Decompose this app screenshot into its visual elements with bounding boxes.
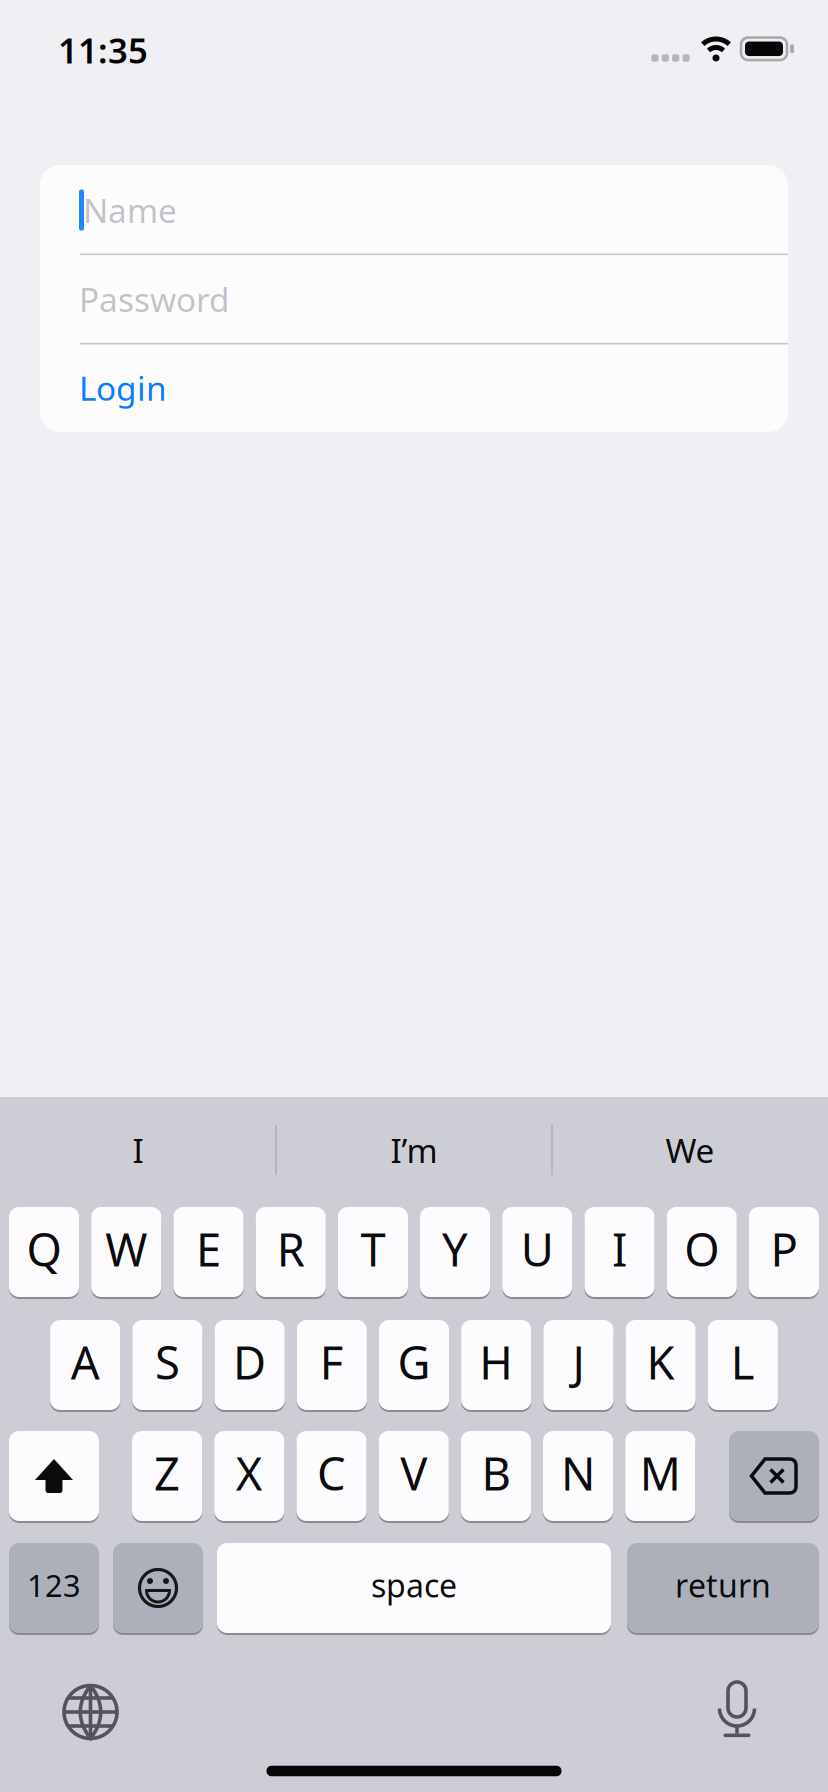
button[interactable]: Z	[132, 1430, 202, 1522]
staticText: 123	[27, 1565, 81, 1605]
staticText: H	[479, 1332, 513, 1392]
button[interactable]: W	[91, 1206, 161, 1298]
staticText: return	[675, 1564, 771, 1606]
button[interactable]: Shift	[9, 1430, 99, 1522]
staticText: S	[155, 1332, 180, 1392]
button[interactable]: K	[625, 1319, 696, 1411]
button[interactable]: We	[555, 1107, 825, 1193]
button[interactable]: Emoji	[113, 1542, 203, 1634]
button[interactable]: Dictation	[715, 1682, 759, 1738]
button[interactable]: V	[379, 1430, 449, 1522]
staticText: Name	[83, 188, 177, 232]
button[interactable]: L	[708, 1319, 778, 1411]
button[interactable]: R	[256, 1206, 326, 1298]
button[interactable]: U	[502, 1206, 572, 1298]
button[interactable]: I	[584, 1206, 655, 1298]
staticText: G	[397, 1332, 430, 1392]
button[interactable]: Delete	[729, 1430, 819, 1522]
button[interactable]: Q	[9, 1206, 79, 1298]
staticText: 11:35	[58, 27, 148, 73]
staticText: I’m	[390, 1128, 437, 1172]
staticText: Login	[79, 366, 167, 410]
button[interactable]: Y	[420, 1206, 490, 1298]
staticText: I	[132, 1128, 143, 1172]
staticText: We	[665, 1128, 714, 1172]
staticText: K	[647, 1332, 675, 1392]
staticText: P	[770, 1219, 797, 1279]
staticText: Q	[27, 1219, 62, 1279]
button[interactable]: G	[379, 1319, 449, 1411]
button[interactable]: Login	[79, 344, 788, 431]
button[interactable]: I’m	[279, 1107, 549, 1193]
button[interactable]: Next keyboard	[55, 1677, 125, 1747]
staticText: V	[400, 1443, 427, 1503]
staticText: N	[561, 1443, 595, 1503]
staticText: L	[731, 1332, 755, 1392]
staticText: T	[360, 1219, 385, 1279]
button[interactable]: J	[543, 1319, 613, 1411]
button[interactable]: A	[50, 1319, 120, 1411]
staticText: O	[684, 1219, 719, 1279]
staticText: space	[371, 1564, 457, 1606]
button[interactable]: Name	[40, 166, 788, 254]
button[interactable]: O	[667, 1206, 737, 1298]
staticText: J	[572, 1332, 584, 1392]
button[interactable]: N	[543, 1430, 613, 1522]
staticText: Password	[79, 277, 230, 321]
staticText: I	[612, 1219, 627, 1279]
button[interactable]: T	[338, 1206, 408, 1298]
button[interactable]: E	[173, 1206, 244, 1298]
staticText: U	[521, 1219, 554, 1279]
staticText: Z	[154, 1443, 180, 1503]
staticText: C	[317, 1443, 346, 1503]
staticText: E	[196, 1219, 221, 1279]
button[interactable]: X	[214, 1430, 284, 1522]
staticText: B	[481, 1443, 510, 1503]
staticText: M	[640, 1443, 681, 1503]
button[interactable]: M	[625, 1430, 695, 1522]
button[interactable]: space	[217, 1542, 611, 1634]
button[interactable]: P	[749, 1206, 819, 1298]
button[interactable]: Password	[40, 255, 788, 343]
button[interactable]: 123	[9, 1542, 99, 1634]
button[interactable]: return	[627, 1542, 819, 1634]
staticText: W	[105, 1219, 147, 1279]
button[interactable]: B	[461, 1430, 531, 1522]
button[interactable]: C	[296, 1430, 367, 1522]
button[interactable]: I	[3, 1107, 273, 1193]
staticText: R	[277, 1219, 305, 1279]
staticText: F	[320, 1332, 344, 1392]
button[interactable]: D	[214, 1319, 285, 1411]
button[interactable]: S	[132, 1319, 202, 1411]
staticText: X	[236, 1443, 263, 1503]
staticText: Y	[442, 1219, 468, 1279]
staticText: D	[233, 1332, 266, 1392]
button[interactable]: H	[461, 1319, 531, 1411]
button[interactable]: F	[297, 1319, 367, 1411]
staticText: A	[71, 1332, 100, 1392]
